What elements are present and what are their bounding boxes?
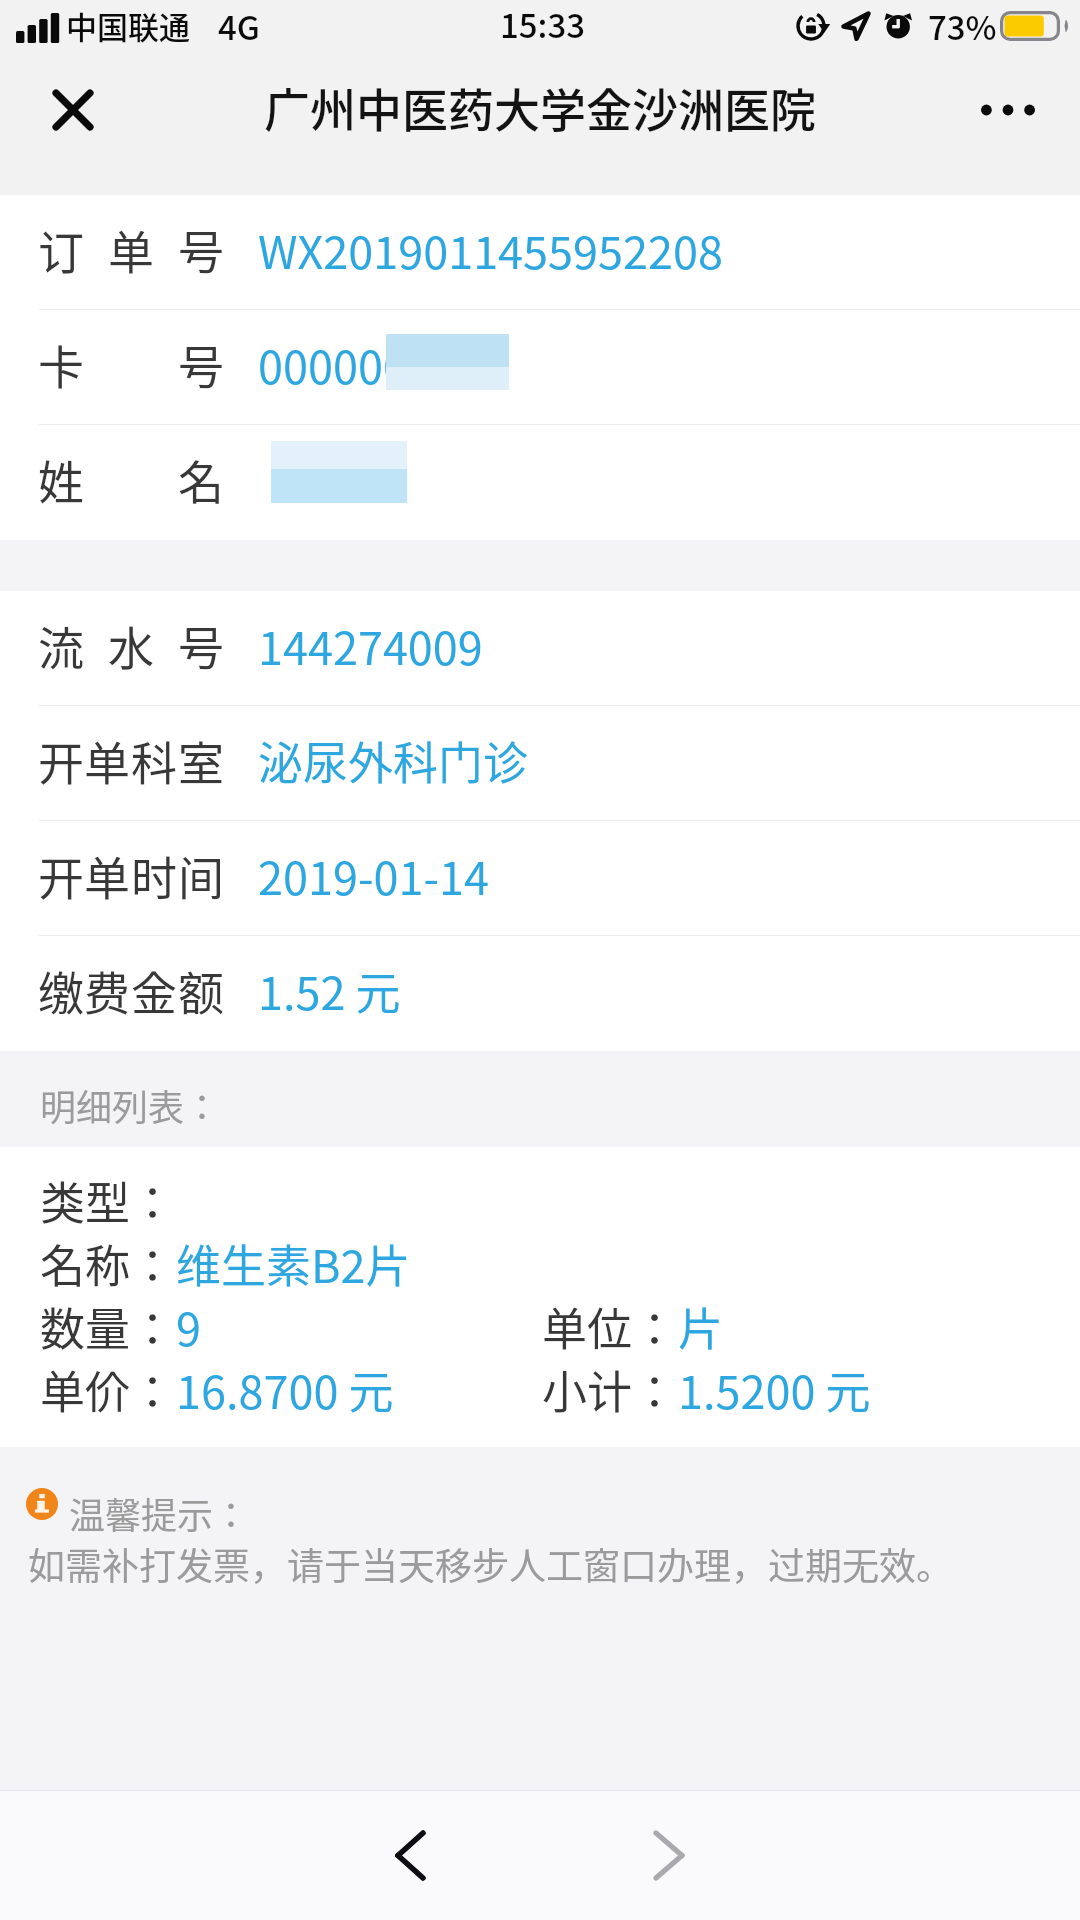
staticText: 9 <box>176 1294 201 1357</box>
button[interactable]: More options <box>968 70 1048 150</box>
staticText: 科 <box>131 727 177 794</box>
staticText: 2019-01-14 <box>258 843 490 908</box>
staticText: 单 <box>108 216 154 283</box>
staticText: 开 <box>38 727 84 794</box>
staticText: 室 <box>178 727 224 794</box>
staticText: 温馨提示： <box>69 1487 250 1539</box>
staticText: 000000 <box>258 332 408 397</box>
staticText: 号 <box>178 216 224 283</box>
staticText: 费 <box>84 957 130 1024</box>
staticText: 片 <box>678 1294 724 1357</box>
staticText: 卡 <box>38 331 84 398</box>
staticText: 73% <box>928 2 997 50</box>
staticText: 单价： <box>40 1357 176 1420</box>
staticText: WX2019011455952208 <box>258 217 723 282</box>
staticText: 额 <box>178 957 224 1024</box>
staticText: 缴 <box>38 957 84 1024</box>
staticText: 维生素B2片 <box>176 1231 411 1294</box>
staticText: 16.8700 元 <box>176 1357 394 1420</box>
staticText: 水 <box>108 612 154 679</box>
staticText: 明细列表： <box>40 1079 221 1131</box>
staticText: 间 <box>178 842 224 909</box>
staticText: 金 <box>131 957 177 1024</box>
staticText: 流 <box>38 612 84 679</box>
staticText: 1.5200 元 <box>678 1357 871 1420</box>
staticText: 号 <box>178 612 224 679</box>
staticText: 数量： <box>40 1294 176 1357</box>
staticText: 名称： <box>40 1231 176 1294</box>
staticText: 单位： <box>542 1294 678 1357</box>
staticText: 类型： <box>40 1168 176 1231</box>
staticText: 144274009 <box>258 613 483 678</box>
staticText: 姓 <box>38 446 84 513</box>
staticText: 如需补打发票，请于当天移步人工窗口办理，过期无效。 <box>28 1537 953 1591</box>
staticText: 中国联通 <box>66 3 190 48</box>
staticText: 订 <box>38 216 84 283</box>
staticText: 广州中医药大学金沙洲医院 <box>264 74 816 141</box>
button[interactable]: Back <box>355 1791 465 1920</box>
staticText: 开 <box>38 842 84 909</box>
staticText: 单 <box>84 842 130 909</box>
staticText: 4G <box>218 2 260 50</box>
button[interactable]: Forward <box>614 1791 724 1920</box>
staticText: 单 <box>84 727 130 794</box>
staticText: 15:33 <box>500 0 586 48</box>
button[interactable]: Close <box>33 70 113 150</box>
staticText: 泌尿外科门诊 <box>258 728 529 793</box>
staticText: 名 <box>178 446 224 513</box>
staticText: 小计： <box>542 1357 678 1420</box>
staticText: 1.52 元 <box>258 958 401 1023</box>
staticText: 时 <box>131 842 177 909</box>
staticText: 号 <box>178 331 224 398</box>
